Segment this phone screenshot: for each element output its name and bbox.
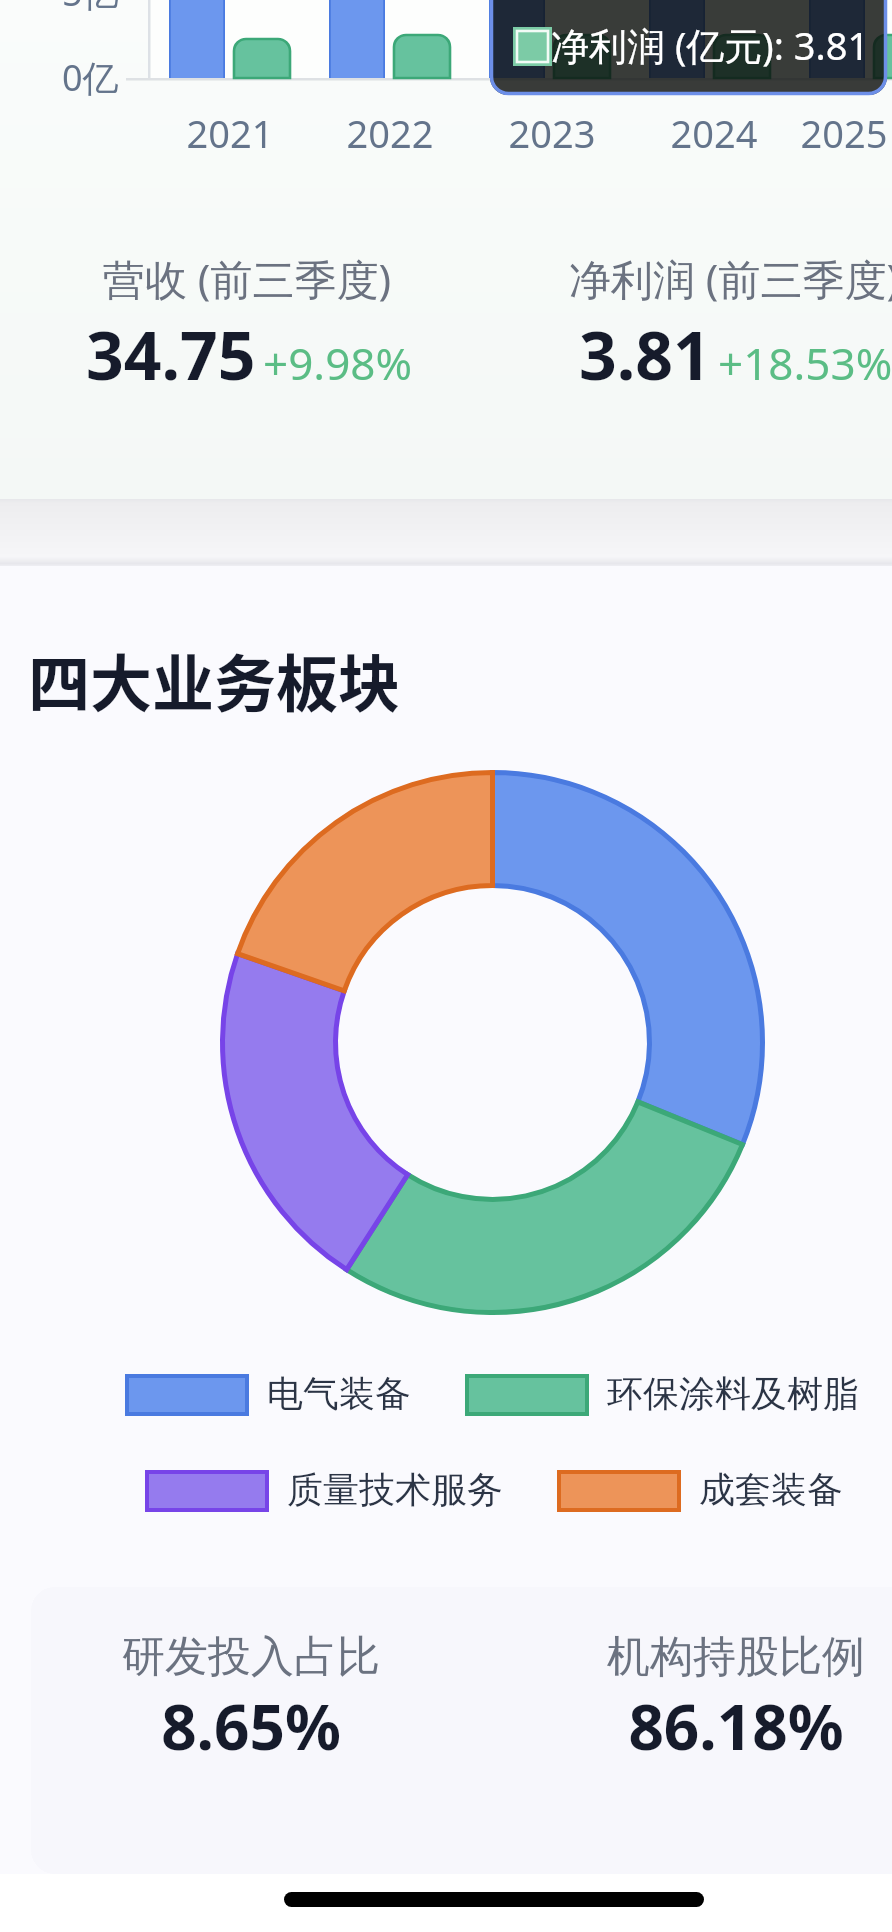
- staticText: 2022: [320, 107, 460, 159]
- staticText: 质量技术服务: [287, 1467, 503, 1512]
- staticText: 净利润 (亿元): 3.81: [551, 19, 870, 71]
- staticText: 环保涂料及树脂: [607, 1371, 859, 1416]
- staticText: 3.81: [579, 309, 711, 399]
- staticText: 5亿: [62, 0, 119, 17]
- staticText: +9.98%: [263, 333, 413, 393]
- staticText: 86.18%: [486, 1684, 892, 1768]
- staticText: 成套装备: [699, 1467, 843, 1512]
- staticText: 2023: [482, 107, 622, 159]
- staticText: 四大业务板块: [28, 635, 401, 725]
- staticText: 机构持股比例: [486, 1630, 892, 1684]
- staticText: 电气装备: [267, 1371, 411, 1416]
- staticText: 8.65%: [1, 1684, 501, 1768]
- staticText: 0亿: [62, 53, 119, 102]
- staticText: 净利润 (前三季度): [484, 250, 892, 307]
- staticText: 研发投入占比: [1, 1630, 501, 1684]
- staticText: 2021: [160, 107, 300, 159]
- staticText: +18.53%: [718, 333, 892, 393]
- staticText: 2025: [774, 107, 892, 159]
- staticText: 34.75: [86, 309, 256, 399]
- staticText: 营收 (前三季度): [0, 250, 497, 307]
- staticText: 2024: [644, 107, 784, 159]
